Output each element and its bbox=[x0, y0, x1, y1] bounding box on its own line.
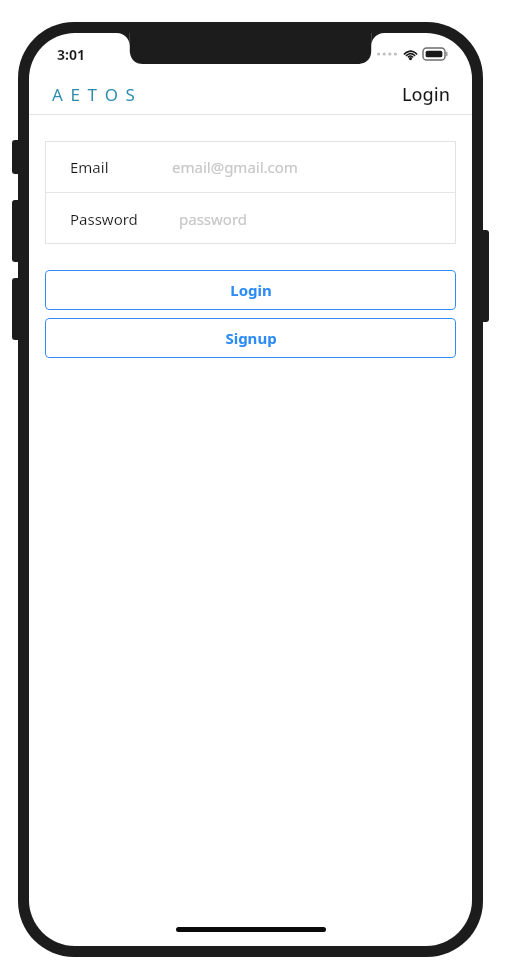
button[interactable]: A E T O S bbox=[52, 83, 137, 106]
staticText: password bbox=[179, 209, 247, 229]
button[interactable]: Password bbox=[45, 193, 456, 244]
staticText: Email bbox=[70, 157, 109, 177]
staticText: 3:01 bbox=[57, 45, 85, 64]
staticText: Password bbox=[70, 209, 138, 229]
staticText: email@gmail.com bbox=[172, 157, 298, 177]
button[interactable]: Signup bbox=[45, 318, 456, 358]
staticText: Login bbox=[230, 280, 272, 300]
button[interactable]: Email bbox=[45, 141, 456, 192]
staticText: Signup bbox=[225, 328, 277, 348]
button[interactable]: Login bbox=[402, 82, 450, 107]
button[interactable]: Login bbox=[45, 270, 456, 310]
